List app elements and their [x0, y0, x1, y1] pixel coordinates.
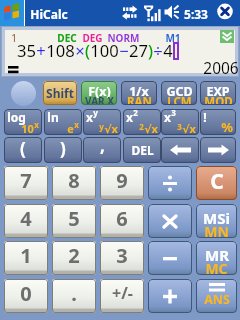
staticText: + — [36, 39, 46, 62]
button[interactable]: 4 — [4, 204, 48, 238]
button[interactable]: ( — [4, 137, 42, 163]
staticText: LCM — [167, 94, 192, 105]
staticText: VAR X — [85, 94, 114, 105]
button[interactable]: More — [220, 30, 234, 43]
button[interactable]: , — [83, 137, 121, 163]
staticText: 1 — [11, 31, 17, 45]
staticText: 6 — [116, 205, 128, 232]
button[interactable]: GCD — [161, 81, 197, 105]
staticText: EXP — [206, 83, 230, 100]
staticText: MC — [205, 259, 228, 275]
staticText: 8 — [68, 167, 80, 194]
staticText: . — [71, 280, 77, 307]
staticText: ! — [203, 109, 207, 125]
button[interactable]: 5 — [52, 204, 96, 238]
staticText: Shift — [46, 85, 74, 101]
staticText: DEC — [57, 31, 77, 45]
button[interactable]: MSi — [196, 204, 237, 238]
staticText: 2 — [68, 242, 80, 269]
staticText: 3 — [116, 242, 128, 269]
button[interactable]: C — [196, 166, 237, 200]
staticText: 5 — [68, 205, 80, 232]
staticText: ( — [85, 39, 90, 62]
button[interactable]: x — [83, 109, 121, 135]
staticText: RAN — [127, 94, 152, 105]
staticText: 0 — [20, 280, 32, 307]
staticText: HiCalc — [30, 6, 68, 22]
staticText: +/- — [112, 282, 133, 304]
button[interactable]: 1/x — [121, 81, 157, 105]
button[interactable]: 8 — [52, 166, 96, 200]
button[interactable]: Shift — [43, 81, 77, 105]
button[interactable]: x — [123, 109, 161, 135]
staticText: x — [34, 119, 39, 130]
staticText: 2 — [139, 121, 144, 132]
staticText: F(x) — [88, 83, 111, 100]
button[interactable]: Equals — [196, 279, 237, 313]
button[interactable]: ) — [44, 137, 82, 163]
staticText: × — [75, 39, 85, 62]
staticText: C — [210, 167, 224, 196]
staticText: ANS — [204, 291, 230, 308]
button[interactable]: ! — [200, 109, 236, 135]
button[interactable]: Close — [217, 3, 233, 19]
button[interactable]: DEL — [123, 137, 161, 163]
button[interactable]: 2 — [52, 241, 96, 275]
button[interactable]: 9 — [100, 166, 144, 200]
staticText: , — [100, 137, 105, 157]
staticText: 100 — [90, 39, 119, 62]
button[interactable]: 0 — [4, 279, 48, 313]
staticText: √x — [144, 121, 158, 135]
button[interactable]: . — [52, 279, 96, 313]
button[interactable]: log — [4, 109, 42, 135]
staticText: 2 — [133, 109, 138, 118]
staticText: 3 — [171, 109, 176, 118]
staticText: √x — [104, 121, 118, 135]
button[interactable]: DIV — [148, 166, 192, 200]
staticText: M1 — [165, 31, 181, 45]
staticText: MSi — [203, 208, 230, 228]
staticText: − — [119, 39, 129, 62]
button[interactable]: x — [161, 109, 199, 135]
button[interactable]: Left — [161, 137, 199, 163]
staticText: e — [67, 121, 74, 135]
staticText: GCD — [166, 83, 193, 100]
staticText: ÷ — [153, 39, 163, 62]
staticText: x — [126, 109, 133, 125]
button[interactable]: +/- — [100, 279, 144, 313]
staticText: ln — [47, 109, 59, 125]
staticText: 1/x — [129, 83, 149, 100]
button[interactable]: 1 — [4, 241, 48, 275]
button[interactable]: MINUS — [148, 241, 192, 275]
button[interactable]: 7 — [4, 166, 48, 200]
button[interactable]: ln — [44, 109, 82, 135]
button[interactable]: MUL — [148, 204, 192, 238]
staticText: x — [164, 109, 171, 125]
staticText: MOD — [204, 94, 233, 105]
staticText: x — [86, 109, 93, 125]
staticText: x — [74, 119, 79, 130]
button[interactable]: Right — [200, 137, 236, 163]
button[interactable]: EXP — [200, 81, 236, 105]
button[interactable]: F(x) — [81, 81, 117, 105]
staticText: 10 — [21, 121, 34, 135]
staticText: 7 — [20, 167, 32, 194]
staticText: y — [93, 109, 98, 118]
button[interactable]: 3 — [100, 241, 144, 275]
staticText: y — [99, 121, 104, 132]
button[interactable]: 6 — [100, 204, 144, 238]
staticText: MR — [205, 245, 229, 265]
staticText: DEG — [82, 31, 103, 45]
staticText: 108 — [46, 39, 75, 62]
staticText: 27 — [129, 39, 148, 62]
staticText: % — [221, 118, 233, 135]
staticText: 5:33 — [184, 6, 208, 22]
staticText: 2006 — [203, 57, 239, 78]
button[interactable]: MR — [196, 241, 237, 275]
staticText: 4 — [20, 205, 32, 232]
button[interactable]: Menu — [11, 81, 36, 106]
button[interactable]: PLUS — [148, 279, 192, 313]
staticText: ) — [148, 39, 153, 62]
staticText: DEL — [131, 142, 154, 158]
staticText: 3 — [177, 121, 182, 132]
